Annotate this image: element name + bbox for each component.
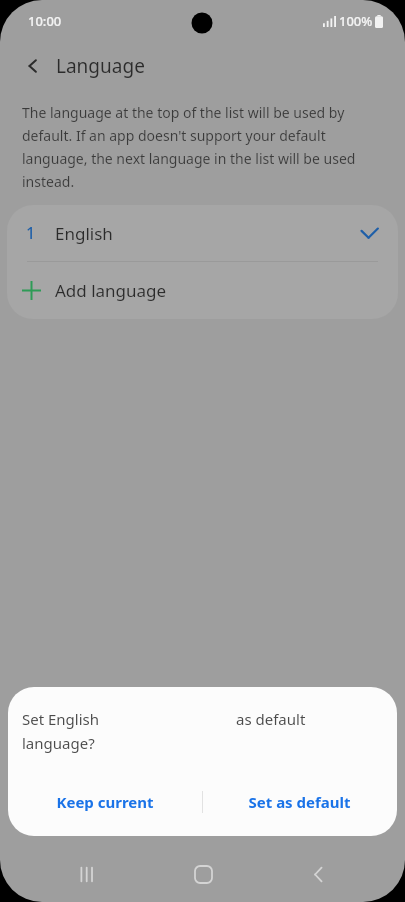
staticText: 10:00 <box>28 12 62 30</box>
staticText: 100% <box>339 12 373 30</box>
staticText: English <box>55 222 113 245</box>
staticText: language? <box>22 733 95 753</box>
button[interactable]: Back <box>290 846 346 902</box>
staticText: 1 <box>26 222 36 244</box>
staticText: Add language <box>55 279 167 302</box>
staticText: Set as default <box>248 792 351 812</box>
staticText: Keep current <box>56 792 154 812</box>
button[interactable]: Keep current <box>8 776 202 828</box>
staticText: as default <box>236 709 306 729</box>
button[interactable]: Set as default <box>202 776 397 828</box>
button[interactable]: 1 <box>7 205 398 261</box>
staticText: The language at the top of the list will… <box>22 103 383 191</box>
button[interactable]: Add language <box>7 262 398 319</box>
button[interactable]: Navigate up <box>14 47 52 85</box>
button[interactable]: Home <box>175 846 231 902</box>
staticText: Set English <box>22 709 100 729</box>
staticText: Language <box>56 53 145 79</box>
button[interactable]: Recent apps <box>59 846 115 902</box>
